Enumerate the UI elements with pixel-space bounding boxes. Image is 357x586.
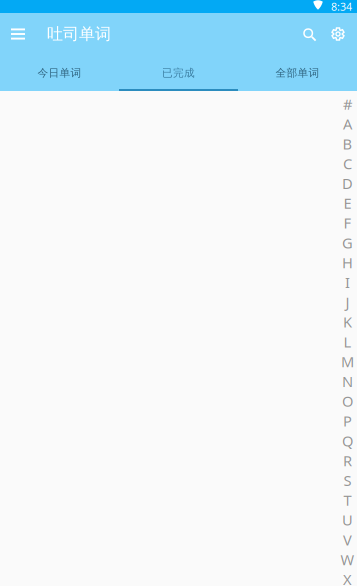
button[interactable]: R — [338, 451, 357, 470]
button[interactable]: O — [338, 391, 357, 411]
staticText: J — [345, 292, 349, 312]
button[interactable]: P — [338, 411, 357, 431]
staticText: 今日单词 — [37, 66, 81, 79]
staticText: 8:34 — [331, 0, 352, 14]
button[interactable]: K — [338, 312, 357, 332]
button[interactable]: H — [338, 253, 357, 272]
button[interactable]: U — [338, 510, 357, 530]
button[interactable]: B — [338, 134, 357, 154]
button[interactable]: Q — [338, 431, 357, 451]
staticText: X — [343, 570, 352, 586]
staticText: A — [343, 114, 352, 134]
staticText: 已完成 — [162, 66, 195, 79]
staticText: 全部单词 — [275, 66, 319, 79]
staticText: C — [343, 154, 352, 173]
button[interactable]: 已完成 — [119, 55, 238, 91]
staticText: M — [341, 352, 354, 371]
staticText: H — [342, 253, 353, 272]
button[interactable]: Settings — [324, 13, 352, 55]
staticText: B — [342, 134, 352, 153]
staticText: W — [340, 550, 354, 569]
staticText: # — [343, 94, 352, 114]
button[interactable]: S — [338, 470, 357, 490]
button[interactable]: Menu — [0, 13, 36, 55]
button[interactable]: V — [338, 530, 357, 550]
staticText: V — [343, 530, 352, 549]
staticText: O — [342, 391, 353, 411]
button[interactable]: D — [338, 173, 357, 193]
button[interactable]: N — [338, 371, 357, 391]
button[interactable]: G — [338, 233, 357, 253]
button[interactable]: J — [338, 292, 357, 312]
staticText: K — [343, 312, 352, 332]
staticText: E — [343, 193, 351, 213]
button[interactable]: L — [338, 332, 357, 352]
staticText: N — [342, 372, 353, 391]
staticText: T — [343, 490, 351, 510]
button[interactable]: W — [338, 550, 357, 569]
button[interactable]: I — [338, 272, 357, 292]
staticText: G — [342, 233, 353, 252]
button[interactable]: F — [338, 213, 357, 233]
button[interactable]: # — [338, 94, 357, 114]
button[interactable]: C — [338, 154, 357, 173]
button[interactable]: Search — [296, 13, 324, 55]
button[interactable]: A — [338, 114, 357, 134]
staticText: U — [342, 510, 353, 530]
staticText: P — [343, 411, 352, 431]
staticText: F — [343, 213, 351, 233]
staticText: Q — [342, 431, 353, 450]
button[interactable]: 今日单词 — [0, 55, 119, 91]
button[interactable]: M — [338, 352, 357, 371]
staticText: D — [342, 174, 353, 193]
staticText: 吐司单词 — [47, 24, 111, 44]
staticText: I — [345, 273, 350, 292]
button[interactable]: T — [338, 490, 357, 510]
staticText: S — [343, 471, 351, 490]
button[interactable]: X — [338, 569, 357, 586]
staticText: R — [343, 451, 352, 470]
button[interactable]: E — [338, 193, 357, 213]
button[interactable]: 全部单词 — [238, 55, 357, 91]
staticText: L — [343, 332, 351, 351]
